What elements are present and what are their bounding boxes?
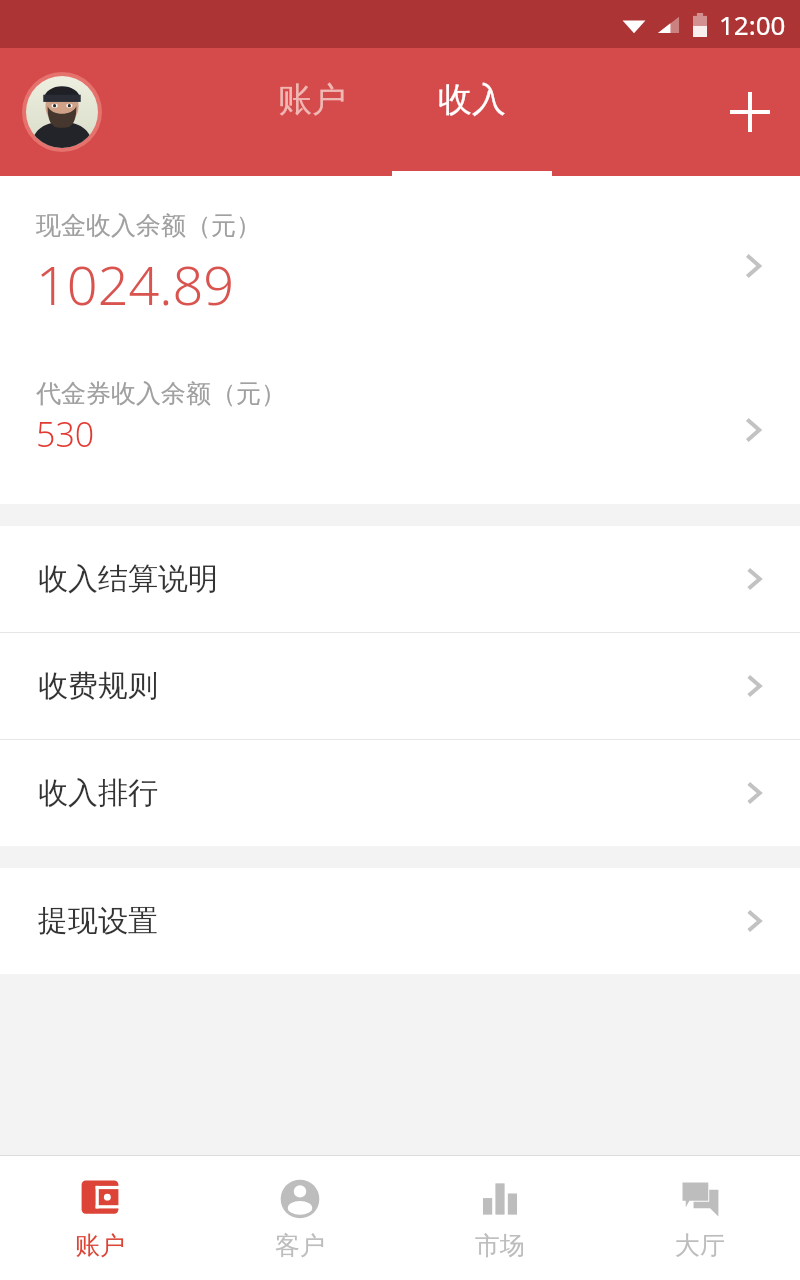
staticText: 大厅 [675, 1230, 725, 1261]
staticText: 现金收入余额（元） [36, 210, 261, 241]
staticText: 12:00 [719, 7, 786, 42]
staticText: 530 [36, 411, 95, 457]
staticText: 代金券收入余额（元） [36, 378, 286, 409]
button[interactable]: 收入排行 [0, 740, 800, 846]
staticText: 收入 [438, 78, 506, 121]
button[interactable]: 账户 [232, 48, 392, 176]
button[interactable]: 账户 [0, 1156, 200, 1280]
staticText: 市场 [475, 1230, 525, 1261]
button[interactable]: 客户 [200, 1156, 400, 1280]
staticText: 收入排行 [38, 774, 158, 812]
staticText: 账户 [278, 78, 346, 121]
button[interactable]: 收费规则 [0, 633, 800, 739]
staticText: 客户 [275, 1230, 325, 1261]
staticText: 收费规则 [38, 667, 158, 705]
button[interactable]: Profile [22, 72, 102, 152]
staticText: 账户 [75, 1230, 125, 1261]
staticText: 收入结算说明 [38, 560, 218, 598]
button[interactable]: 提现设置 [0, 868, 800, 974]
button[interactable]: 收入结算说明 [0, 526, 800, 632]
button[interactable]: 收入 [392, 48, 552, 176]
button[interactable]: 代金券收入余额（元） [0, 356, 800, 504]
button[interactable]: Add [718, 80, 782, 144]
staticText: 提现设置 [38, 902, 158, 940]
button[interactable]: 大厅 [600, 1156, 800, 1280]
staticText: 1024.89 [36, 247, 235, 321]
button[interactable]: 市场 [400, 1156, 600, 1280]
button[interactable]: 现金收入余额（元） [0, 176, 800, 356]
